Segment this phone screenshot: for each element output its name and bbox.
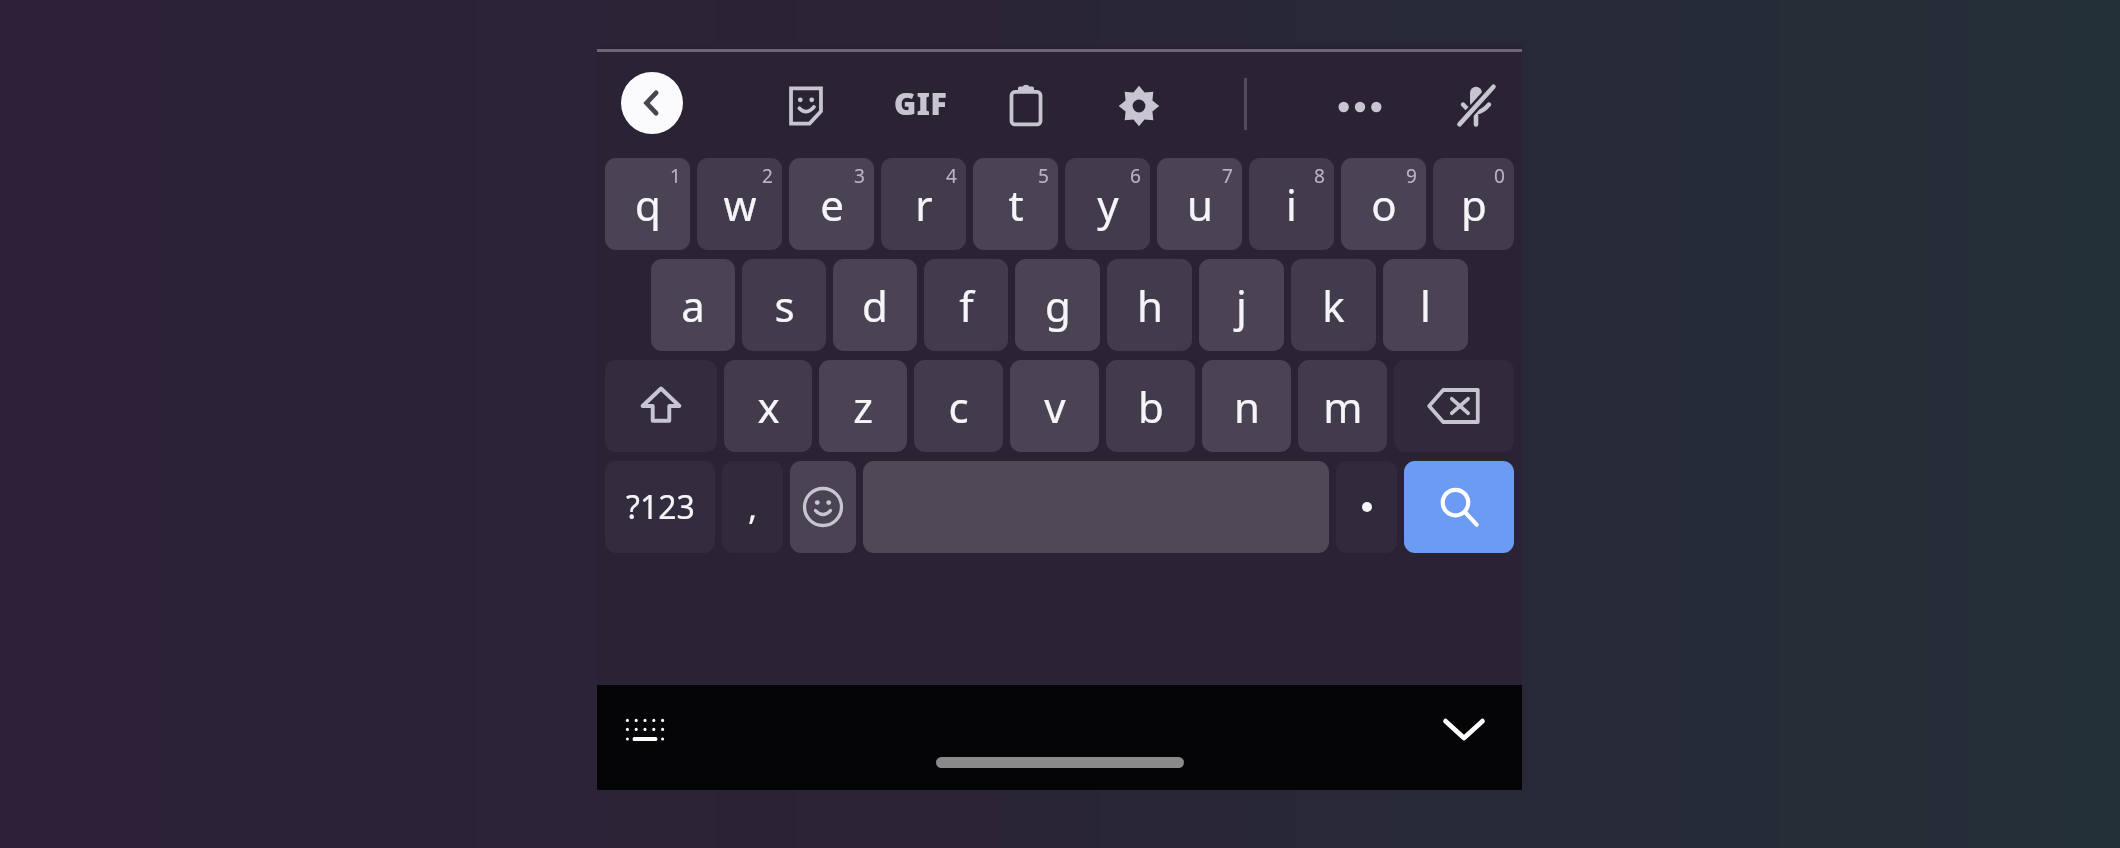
button[interactable]: s	[742, 259, 826, 351]
staticText: ?123	[626, 485, 695, 529]
button[interactable]: Settings	[1105, 72, 1173, 140]
button[interactable]: i	[1249, 158, 1334, 250]
staticText: b	[1138, 378, 1164, 435]
staticText: t	[1008, 176, 1024, 233]
staticText: c	[948, 378, 969, 435]
staticText: m	[1323, 378, 1363, 435]
staticText: e	[820, 176, 844, 233]
staticText: s	[774, 277, 795, 334]
button[interactable]: g	[1015, 259, 1100, 351]
button[interactable]: t	[973, 158, 1058, 250]
staticText: z	[853, 378, 873, 435]
button[interactable]: Back	[621, 72, 683, 134]
staticText: i	[1286, 176, 1297, 233]
staticText: k	[1322, 277, 1345, 334]
staticText: q	[635, 176, 661, 233]
staticText: p	[1461, 176, 1487, 233]
staticText: 0	[1494, 163, 1505, 189]
button[interactable]: m	[1298, 360, 1387, 452]
staticText: 6	[1130, 163, 1141, 189]
button[interactable]: h	[1107, 259, 1192, 351]
staticText: j	[1236, 277, 1247, 334]
staticText: n	[1234, 378, 1260, 435]
button[interactable]: q	[605, 158, 690, 250]
button[interactable]: d	[833, 259, 917, 351]
button[interactable]: Emoji	[790, 461, 856, 553]
button[interactable]: p	[1433, 158, 1514, 250]
button[interactable]: n	[1202, 360, 1291, 452]
button[interactable]: j	[1199, 259, 1284, 351]
button[interactable]: More options	[1325, 72, 1395, 142]
staticText: x	[757, 378, 780, 435]
staticText: GIF	[894, 83, 948, 124]
button[interactable]: Voice input off	[1440, 70, 1512, 142]
staticText: 4	[946, 163, 957, 189]
staticText: f	[959, 277, 974, 334]
staticText: ,	[748, 484, 758, 530]
button[interactable]: c	[914, 360, 1003, 452]
button[interactable]: k	[1291, 259, 1376, 351]
button[interactable]: z	[819, 360, 907, 452]
staticText: r	[915, 176, 933, 233]
staticText: a	[681, 277, 705, 334]
staticText: 8	[1314, 163, 1325, 189]
button[interactable]: w	[697, 158, 782, 250]
staticText: d	[862, 277, 888, 334]
button[interactable]: Hide keyboard	[1428, 699, 1500, 759]
button[interactable]: Switch keyboard	[609, 701, 681, 759]
button[interactable]: Search	[1404, 461, 1514, 553]
button[interactable]: Comma	[722, 461, 783, 553]
staticText: 3	[854, 163, 865, 189]
button[interactable]: y	[1065, 158, 1150, 250]
button[interactable]: Backspace	[1394, 360, 1514, 452]
button[interactable]: f	[924, 259, 1008, 351]
staticText: 2	[762, 163, 773, 189]
button[interactable]: x	[724, 360, 812, 452]
button[interactable]: Shift	[605, 360, 717, 452]
staticText: l	[1420, 277, 1431, 334]
button[interactable]: b	[1106, 360, 1195, 452]
staticText: 5	[1038, 163, 1049, 189]
staticText: o	[1371, 176, 1397, 233]
button[interactable]: v	[1010, 360, 1099, 452]
staticText: 9	[1406, 163, 1417, 189]
staticText: g	[1045, 277, 1071, 334]
button[interactable]: Clipboard	[992, 72, 1060, 140]
staticText: 1	[670, 163, 681, 189]
button[interactable]: Symbols	[605, 461, 715, 553]
button[interactable]: r	[881, 158, 966, 250]
button[interactable]: e	[789, 158, 874, 250]
staticText: 7	[1222, 163, 1233, 189]
button[interactable]: Period	[1336, 461, 1397, 553]
staticText: h	[1137, 277, 1163, 334]
staticText: u	[1187, 176, 1213, 233]
button[interactable]: a	[651, 259, 735, 351]
button[interactable]: o	[1341, 158, 1426, 250]
staticText: v	[1044, 378, 1066, 435]
button[interactable]: l	[1383, 259, 1468, 351]
staticText: y	[1097, 176, 1119, 233]
button[interactable]: GIF	[880, 74, 962, 132]
staticText: w	[723, 176, 757, 233]
button[interactable]: u	[1157, 158, 1242, 250]
button[interactable]: Stickers	[772, 72, 840, 140]
